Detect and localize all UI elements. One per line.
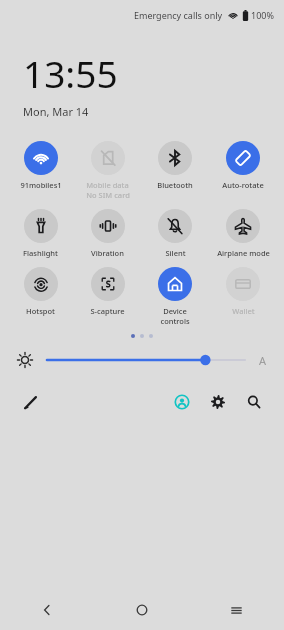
- button[interactable]: S-capture: [74, 267, 141, 316]
- staticText: Silent: [165, 248, 186, 258]
- button[interactable]: Search: [242, 390, 266, 414]
- staticText: controls: [160, 316, 190, 326]
- staticText: Vibration: [91, 248, 124, 258]
- button[interactable]: Wallet: [209, 267, 277, 316]
- button[interactable]: Back: [0, 590, 94, 630]
- staticText: S-capture: [90, 306, 125, 316]
- button[interactable]: Bluetooth: [141, 141, 209, 190]
- staticText: No SIM card: [86, 190, 130, 200]
- staticText: Mobile data: [86, 180, 129, 190]
- button[interactable]: Device: [141, 267, 209, 326]
- button[interactable]: Edit: [18, 390, 42, 414]
- button[interactable]: 91mobiles1: [7, 141, 74, 190]
- button[interactable]: User profile: [170, 390, 194, 414]
- button[interactable]: Auto-rotate: [209, 141, 277, 190]
- staticText: Hotspot: [26, 306, 55, 316]
- staticText: Mon, Mar 14: [23, 104, 89, 119]
- staticText: 13:55: [23, 48, 118, 98]
- button[interactable]: Mobile data: [74, 141, 141, 200]
- button[interactable]: Flashlight: [7, 209, 74, 258]
- button[interactable]: Settings: [206, 390, 230, 414]
- staticText: 91mobiles1: [20, 180, 62, 190]
- staticText: Airplane mode: [217, 248, 270, 258]
- button[interactable]: Home: [94, 590, 189, 630]
- button[interactable]: Airplane mode: [209, 209, 277, 258]
- button[interactable]: Recent apps: [189, 590, 284, 630]
- staticText: Emergency calls only: [134, 9, 223, 21]
- staticText: Device: [163, 306, 187, 316]
- staticText: Bluetooth: [157, 180, 193, 190]
- button[interactable]: Silent: [141, 209, 209, 258]
- button[interactable]: Vibration: [74, 209, 141, 258]
- staticText: Wallet: [232, 306, 255, 316]
- staticText: Flashlight: [23, 248, 58, 258]
- staticText: Auto-rotate: [222, 180, 264, 190]
- staticText: A: [259, 353, 267, 368]
- button[interactable]: Hotspot: [7, 267, 74, 316]
- staticText: 100%: [251, 9, 274, 21]
